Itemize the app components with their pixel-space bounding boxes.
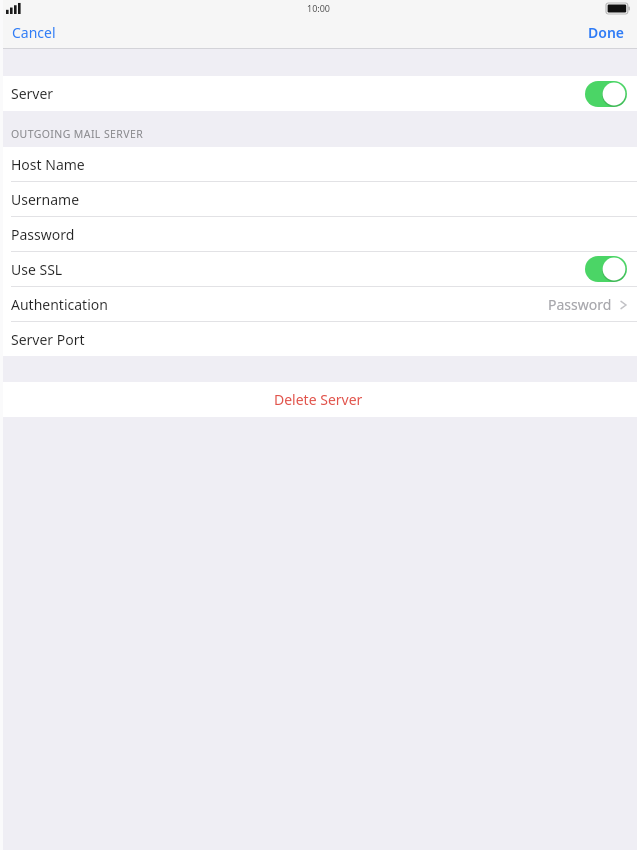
- button[interactable]: Password: [0, 217, 637, 251]
- staticText: Cancel: [12, 23, 56, 42]
- button[interactable]: Done: [584, 19, 629, 46]
- button[interactable]: Server enabled: [585, 81, 627, 107]
- button[interactable]: Username: [0, 182, 637, 216]
- staticText: Server: [11, 84, 54, 103]
- staticText: Server Port: [11, 330, 85, 349]
- button[interactable]: Authentication: [0, 287, 637, 321]
- button[interactable]: Use SSL enabled: [585, 256, 627, 282]
- button[interactable]: Server Port: [0, 322, 637, 356]
- button[interactable]: Host Name: [0, 147, 637, 181]
- button[interactable]: Delete Server: [0, 382, 637, 417]
- staticText: Password: [11, 225, 75, 244]
- staticText: 10:00: [307, 2, 331, 14]
- staticText: Use SSL: [11, 260, 63, 279]
- button[interactable]: Cancel: [8, 19, 60, 46]
- staticText: Delete Server: [274, 390, 363, 409]
- staticText: Done: [588, 23, 625, 42]
- staticText: Username: [11, 190, 80, 209]
- staticText: Authentication: [11, 295, 108, 314]
- staticText: Host Name: [11, 155, 85, 174]
- staticText: OUTGOING MAIL SERVER: [11, 127, 144, 141]
- staticText: Password: [548, 295, 612, 314]
